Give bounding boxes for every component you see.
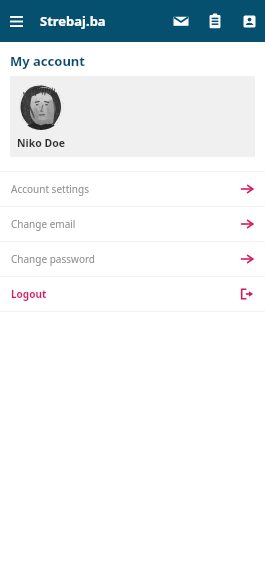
staticText: Account settings (11, 182, 89, 196)
staticText: Logout (11, 287, 47, 301)
staticText: Change email (11, 217, 76, 231)
staticText: Change password (11, 252, 96, 266)
staticText: Niko Doe (17, 136, 65, 150)
button[interactable]: Menu (3, 8, 30, 35)
button[interactable]: Niko Doe (10, 76, 255, 157)
button[interactable]: Change password (0, 242, 265, 276)
button[interactable]: Change email (0, 207, 265, 241)
button[interactable]: Account (237, 9, 261, 33)
button[interactable]: Messages (169, 9, 193, 33)
button[interactable]: Account settings (0, 172, 265, 206)
button[interactable]: Orders (203, 9, 227, 33)
staticText: My account (10, 52, 85, 70)
staticText: Strebaj.ba (40, 12, 106, 30)
button[interactable]: Logout (0, 277, 265, 311)
